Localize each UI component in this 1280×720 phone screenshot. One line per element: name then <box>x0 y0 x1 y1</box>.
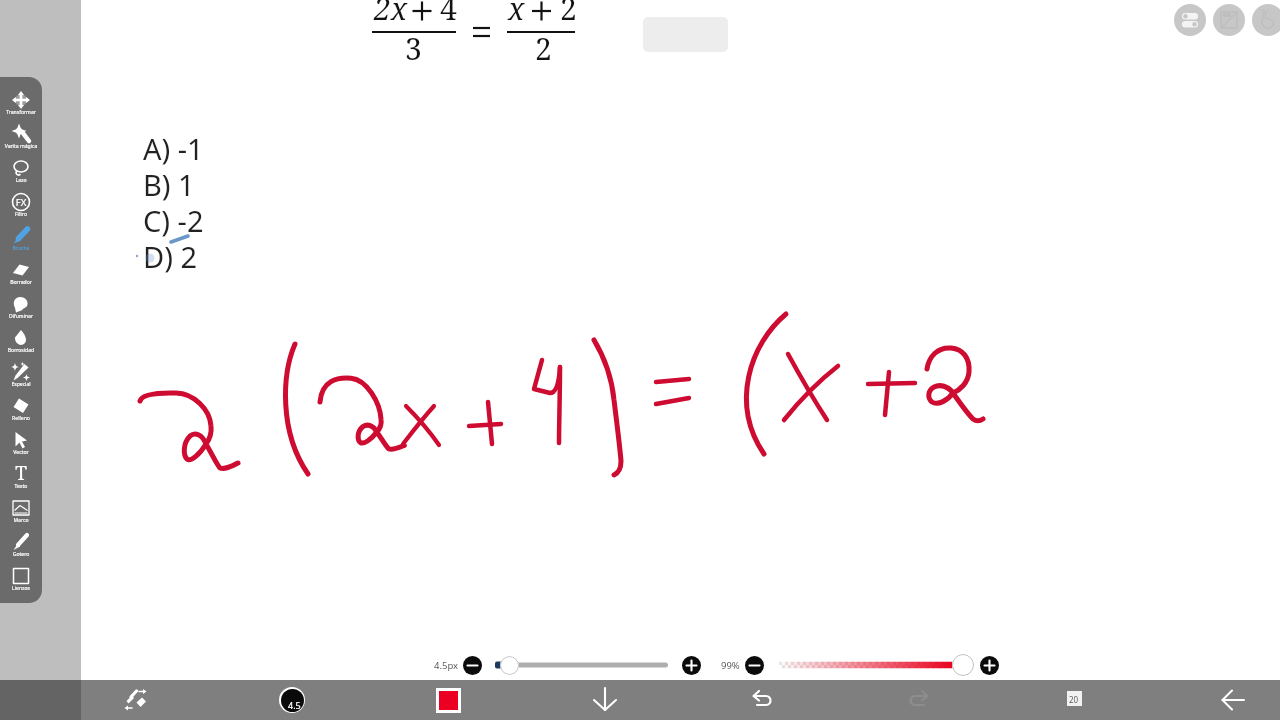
button[interactable]: Back <box>1211 680 1255 720</box>
staticText: Borrador <box>0 279 42 286</box>
staticText: Vector <box>0 449 42 456</box>
button[interactable]: Undo <box>740 680 784 720</box>
button[interactable]: T <box>0 456 42 490</box>
button[interactable]: Brush size 4.5 <box>279 687 305 713</box>
staticText: Varita mágica <box>0 143 42 150</box>
staticText: 99% <box>721 659 740 672</box>
staticText: B) 1 <box>143 165 195 204</box>
staticText: Filtro <box>0 211 42 218</box>
staticText: Texto <box>0 483 42 490</box>
staticText: A) -1 <box>143 129 204 168</box>
staticText: 3 <box>405 28 422 69</box>
button[interactable]: Swap brush and eraser <box>114 680 158 720</box>
button[interactable]: Redo <box>897 680 941 720</box>
staticText: 4 <box>440 0 457 29</box>
button[interactable]: Increase <box>980 656 999 675</box>
button[interactable]: Settings <box>1174 4 1206 36</box>
button[interactable]: FX <box>0 184 42 218</box>
button[interactable]: Slider handle <box>952 654 974 676</box>
button[interactable]: Decrease <box>745 656 764 675</box>
button[interactable]: Relleno <box>0 388 42 422</box>
button[interactable]: Especial <box>0 354 42 388</box>
staticText: C) -2 <box>143 201 204 240</box>
button[interactable]: Vector <box>0 422 42 456</box>
button[interactable]: Lienzos <box>0 558 42 592</box>
staticText: Borrosidad <box>0 347 42 354</box>
button[interactable]: Gotero <box>0 524 42 558</box>
staticText: 4.5px <box>434 659 459 672</box>
staticText: Relleno <box>0 415 42 422</box>
button[interactable]: Layers, 20 <box>1060 684 1092 716</box>
staticText: D) 2 <box>143 237 197 276</box>
staticText: Marco <box>0 517 42 524</box>
staticText: Lienzos <box>0 585 42 592</box>
staticText: x <box>508 0 525 29</box>
staticText: 2 <box>560 0 577 29</box>
staticText: T <box>0 460 42 486</box>
staticText: 2x <box>374 0 408 29</box>
staticText: 20 <box>1069 694 1079 705</box>
staticText: 4.5 <box>288 699 301 711</box>
button[interactable]: Difuminar <box>0 286 42 320</box>
staticText: Transformar <box>0 109 42 116</box>
button[interactable]: Marco <box>0 490 42 524</box>
button[interactable]: Brocha <box>0 218 42 252</box>
staticText: Lazo <box>0 177 42 184</box>
button[interactable]: Select area <box>1213 4 1245 36</box>
button[interactable]: Increase <box>682 656 701 675</box>
staticText: Difuminar <box>0 313 42 320</box>
button[interactable]: Decrease <box>463 656 482 675</box>
button[interactable]: Transformar <box>0 82 42 116</box>
button[interactable]: Lazo <box>0 150 42 184</box>
button[interactable]: Slider handle <box>500 656 519 675</box>
staticText: Gotero <box>0 551 42 558</box>
staticText: Brocha <box>0 245 42 252</box>
staticText: FX <box>0 196 42 209</box>
staticText: 2 <box>535 28 552 69</box>
button[interactable]: Download <box>583 680 627 720</box>
button[interactable]: Borrosidad <box>0 320 42 354</box>
button[interactable]: Pan <box>1252 4 1280 36</box>
staticText: Especial <box>0 381 42 388</box>
button[interactable]: Borrador <box>0 252 42 286</box>
button[interactable]: Varita mágica <box>0 116 42 150</box>
